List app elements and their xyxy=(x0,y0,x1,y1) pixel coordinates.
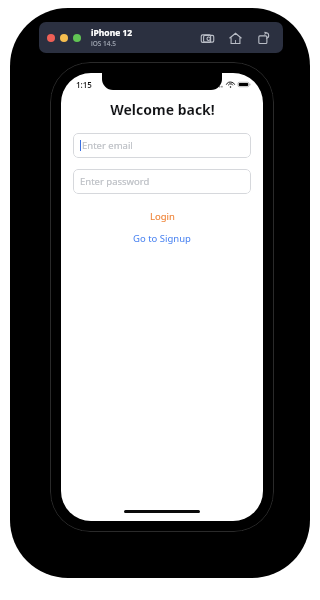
staticText: Welcome back! xyxy=(110,100,215,119)
staticText: Enter email xyxy=(82,139,133,152)
button[interactable]: Window control xyxy=(73,34,81,42)
staticText: iPhone 12 xyxy=(91,27,133,39)
button[interactable]: Rotate xyxy=(252,27,274,49)
staticText: iOS 14.5 xyxy=(91,39,117,48)
staticText: Go to Signup xyxy=(133,232,191,245)
button[interactable]: Screenshot xyxy=(196,27,218,49)
button[interactable]: Home xyxy=(224,27,246,49)
button[interactable]: Go to Signup xyxy=(61,229,263,247)
button[interactable]: Window control xyxy=(47,34,55,42)
staticText: 1:15 xyxy=(76,79,92,90)
button[interactable]: Window control xyxy=(60,34,68,42)
button[interactable]: Enter password xyxy=(73,169,251,194)
staticText: Enter password xyxy=(80,175,150,188)
button[interactable]: Enter email xyxy=(73,133,251,158)
button[interactable]: Login xyxy=(61,207,263,225)
staticText: Login xyxy=(150,210,175,223)
